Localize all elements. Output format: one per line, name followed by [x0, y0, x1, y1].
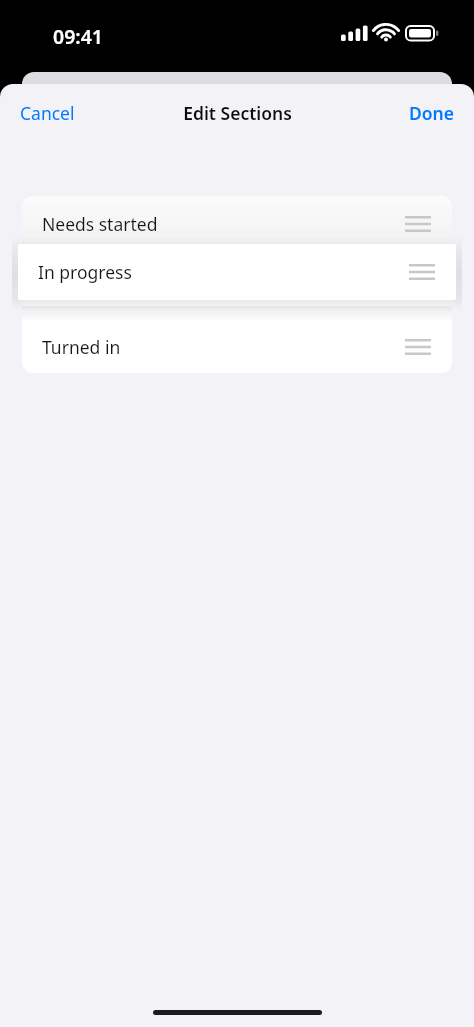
button[interactable]: Cancel [0, 91, 95, 135]
staticText: In progress [38, 260, 132, 284]
staticText: Done [409, 101, 455, 125]
button[interactable]: Turned in [22, 320, 452, 373]
button[interactable]: In progress [18, 244, 456, 300]
other: Reorder In progress [409, 263, 435, 281]
staticText: Edit Sections [183, 101, 292, 125]
button[interactable]: Done [390, 91, 474, 135]
other: Reorder Needs started [405, 215, 431, 233]
staticText: Cancel [20, 101, 75, 125]
staticText: 09:41 [53, 23, 103, 50]
staticText: Needs started [42, 212, 158, 236]
staticText: Turned in [42, 335, 121, 359]
button[interactable]: Needs started [22, 196, 452, 251]
other: Reorder Turned in [405, 338, 431, 356]
